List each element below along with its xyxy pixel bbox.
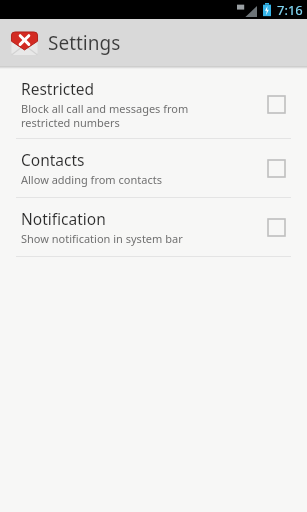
staticText: Settings [48, 30, 121, 56]
staticText: Notification [21, 208, 106, 229]
staticText: Restricted [21, 78, 95, 99]
button[interactable]: Contacts [0, 139, 307, 197]
staticText: Allow adding from contacts [21, 172, 162, 187]
staticText: 7:16 [277, 1, 303, 19]
button[interactable]: App icon [0, 19, 307, 66]
button[interactable]: Restricted [261, 89, 291, 119]
staticText: Show notification in system bar [21, 231, 183, 246]
button[interactable]: Notification [261, 212, 291, 242]
button[interactable]: Notification [0, 198, 307, 256]
staticText: Contacts [21, 149, 85, 170]
staticText: Block all call and messages from restric… [21, 101, 189, 130]
other: App icon [9, 27, 40, 58]
button[interactable]: Restricted [0, 69, 307, 138]
button[interactable]: Contacts [261, 153, 291, 183]
